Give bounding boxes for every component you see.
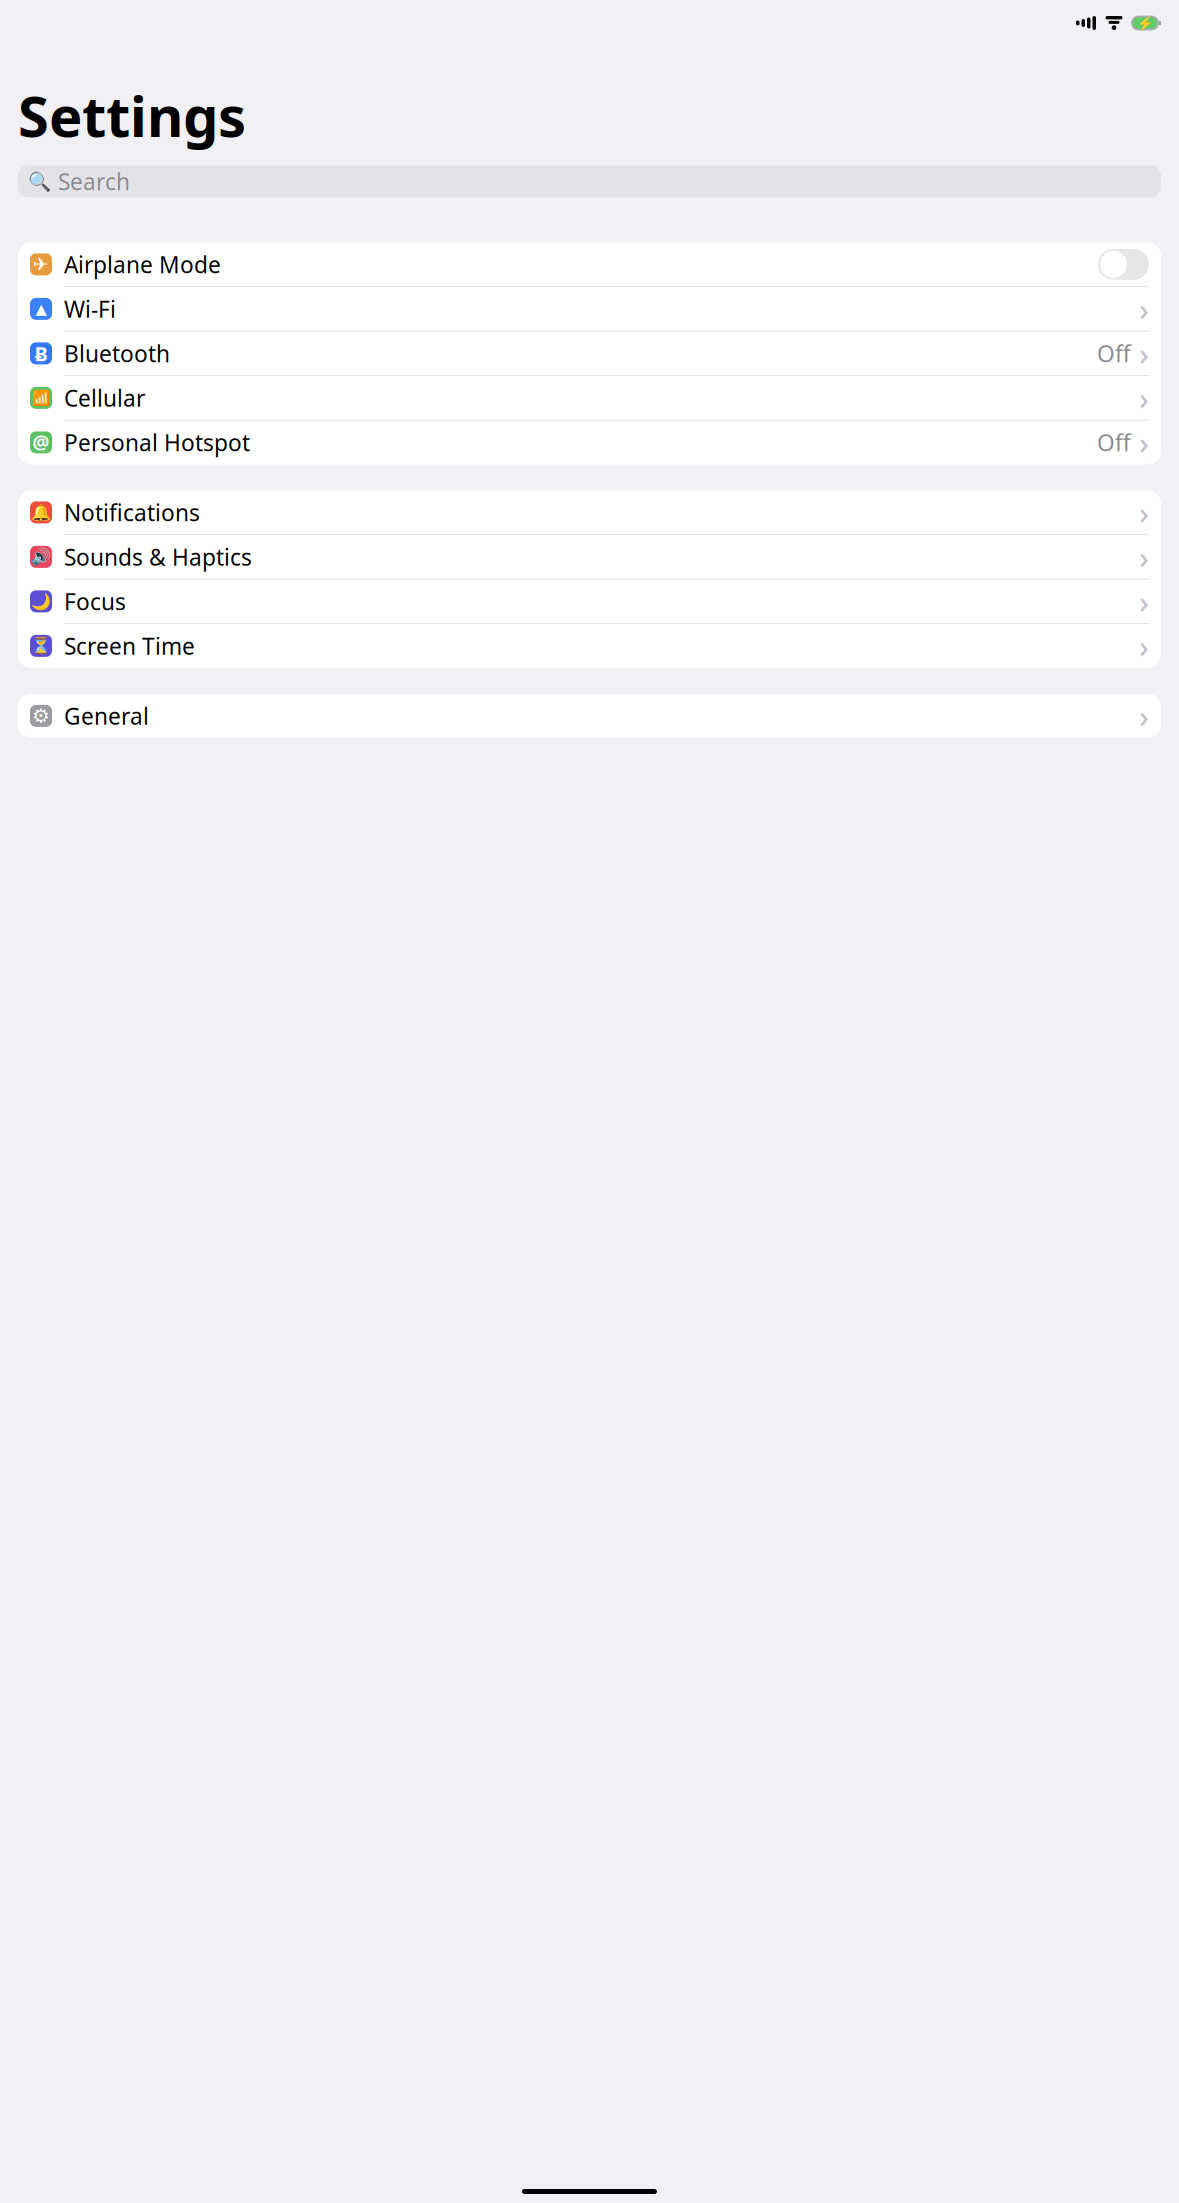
button[interactable]: 🔍 — [18, 165, 1161, 197]
staticText: 🔍 — [28, 171, 51, 192]
staticText: Off — [1097, 338, 1131, 368]
button[interactable]: ▲ — [18, 287, 1161, 331]
button[interactable]: @ — [18, 420, 1161, 464]
staticText: ⚙ — [32, 704, 50, 727]
staticText: 📶 — [32, 389, 50, 406]
staticText: ✈ — [33, 254, 49, 275]
staticText: Airplane Mode — [64, 249, 221, 279]
staticText: 🌙 — [31, 592, 51, 610]
staticText: Bluetooth — [64, 338, 170, 368]
button[interactable]: 📶 — [18, 376, 1161, 420]
staticText: 🔔 — [31, 503, 51, 521]
staticText: Search — [58, 166, 130, 196]
button[interactable]: 🔔 — [18, 490, 1161, 535]
staticText: › — [1139, 422, 1149, 463]
staticText: Wi-Fi — [64, 294, 116, 324]
staticText: › — [1139, 377, 1149, 418]
button[interactable]: ✈ — [18, 242, 1161, 287]
staticText: › — [1139, 625, 1149, 666]
staticText: General — [64, 701, 149, 731]
staticText: ⚡ — [1136, 15, 1153, 31]
staticText: › — [1139, 492, 1149, 533]
staticText: 🔊 — [31, 548, 51, 566]
button[interactable]: ⚙ — [18, 694, 1161, 738]
button[interactable]: 🔊 — [18, 535, 1161, 579]
button[interactable]: ⏳ — [18, 624, 1161, 668]
staticText: › — [1139, 536, 1149, 577]
button[interactable]: 🌙 — [18, 579, 1161, 624]
staticText: Screen Time — [64, 631, 195, 661]
staticText: ▲ — [35, 300, 46, 317]
staticText: Notifications — [64, 497, 200, 527]
staticText: @ — [32, 430, 49, 455]
staticText: Personal Hotspot — [64, 427, 250, 457]
staticText: Sounds & Haptics — [64, 542, 252, 572]
staticText: › — [1139, 333, 1149, 374]
staticText: › — [1139, 695, 1149, 736]
staticText: Settings — [18, 78, 246, 152]
staticText: Ƀ — [34, 340, 47, 367]
staticText: ⏳ — [31, 637, 51, 655]
staticText: Focus — [64, 586, 126, 616]
staticText: Cellular — [64, 383, 145, 413]
button[interactable]: Ƀ — [18, 331, 1161, 376]
staticText: › — [1139, 581, 1149, 622]
staticText: Off — [1097, 427, 1131, 457]
staticText: › — [1139, 288, 1149, 329]
